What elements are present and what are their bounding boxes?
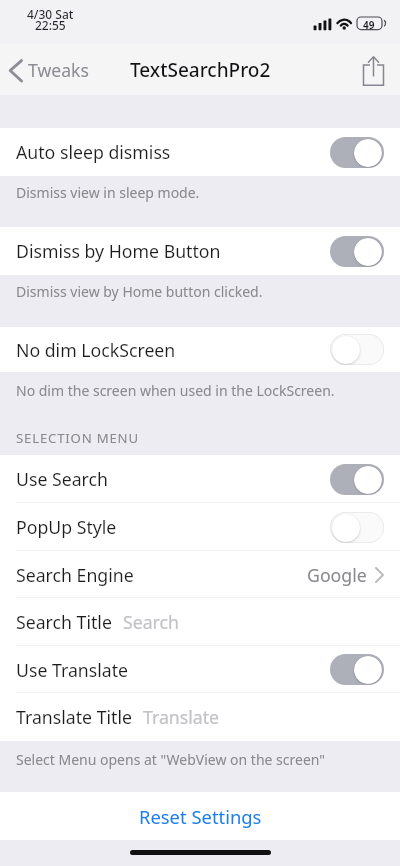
button[interactable]: PopUp Style [0, 503, 400, 551]
button[interactable]: Toggle off [330, 512, 384, 543]
staticText: 22:55 [35, 17, 66, 33]
button[interactable]: Share [352, 47, 394, 92]
staticText: Dismiss by Home Button [16, 239, 221, 263]
staticText: Google [307, 563, 367, 587]
button[interactable]: Toggle on [330, 464, 384, 495]
staticText: 4/30 Sat [27, 6, 74, 22]
button[interactable]: No dim LockScreen [0, 327, 400, 372]
staticText: Search Title [16, 610, 112, 634]
button[interactable]: Translate Title [0, 693, 400, 741]
staticText: No dim LockScreen [16, 338, 176, 362]
button[interactable]: Search Title [0, 598, 400, 646]
button[interactable]: Toggle on [330, 236, 384, 267]
staticText: Search [123, 610, 179, 634]
staticText: Use Search [16, 467, 108, 491]
staticText: Tweaks [28, 58, 89, 82]
button[interactable]: Tweaks [8, 48, 89, 92]
button[interactable]: Use Search [0, 455, 400, 503]
staticText: PopUp Style [16, 515, 117, 539]
staticText: Select Menu opens at "WebView on the scr… [16, 750, 326, 769]
staticText: Auto sleep dismiss [16, 140, 171, 164]
staticText: No dim the screen when used in the LockS… [16, 381, 335, 400]
staticText: Dismiss view in sleep mode. [16, 183, 200, 202]
staticText: SELECTION MENU [16, 429, 139, 447]
button[interactable]: Search Engine [0, 551, 400, 598]
staticText: Use Translate [16, 658, 129, 682]
staticText: Reset Settings [139, 804, 262, 829]
staticText: TextSearchPro2 [130, 57, 271, 83]
staticText: Dismiss view by Home button clicked. [16, 282, 263, 301]
staticText: Translate [143, 705, 220, 729]
button[interactable]: Use Translate [0, 646, 400, 693]
staticText: Translate Title [16, 705, 132, 729]
staticText: Search Engine [16, 563, 134, 587]
staticText: 49 [363, 18, 375, 32]
button[interactable]: Toggle on [330, 137, 384, 168]
button[interactable]: Reset Settings [0, 792, 400, 840]
button[interactable]: Toggle on [330, 654, 384, 685]
button[interactable]: Dismiss by Home Button [0, 227, 400, 275]
button[interactable]: Auto sleep dismiss [0, 128, 400, 176]
button[interactable]: Toggle off [330, 334, 384, 365]
